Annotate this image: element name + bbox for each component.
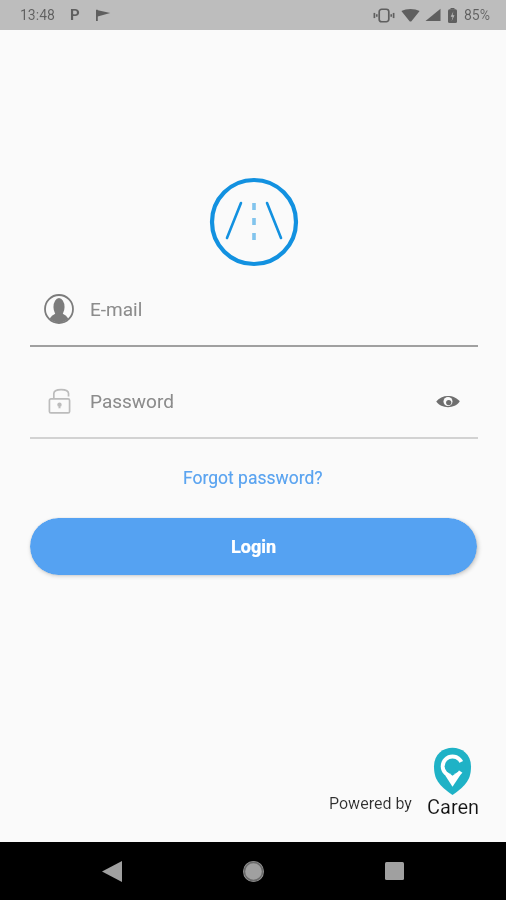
staticText: P	[70, 6, 80, 24]
button[interactable]: Forgot password?	[173, 462, 333, 495]
staticText: 85%	[464, 7, 490, 23]
staticText: 13:48	[20, 7, 55, 23]
button[interactable]: Recent apps	[364, 842, 424, 900]
button[interactable]: Login	[30, 518, 477, 575]
button[interactable]: Password	[0, 374, 506, 428]
button[interactable]: Show password	[428, 381, 468, 421]
button[interactable]: E-mail	[0, 282, 506, 336]
staticText: Password	[90, 390, 174, 412]
staticText: Forgot password?	[183, 468, 323, 489]
button[interactable]: Back	[82, 842, 142, 900]
staticText: Login	[231, 536, 277, 557]
staticText: Caren	[427, 795, 480, 818]
staticText: E-mail	[90, 298, 143, 320]
staticText: Powered by	[329, 794, 412, 813]
button[interactable]: Home	[223, 842, 283, 900]
